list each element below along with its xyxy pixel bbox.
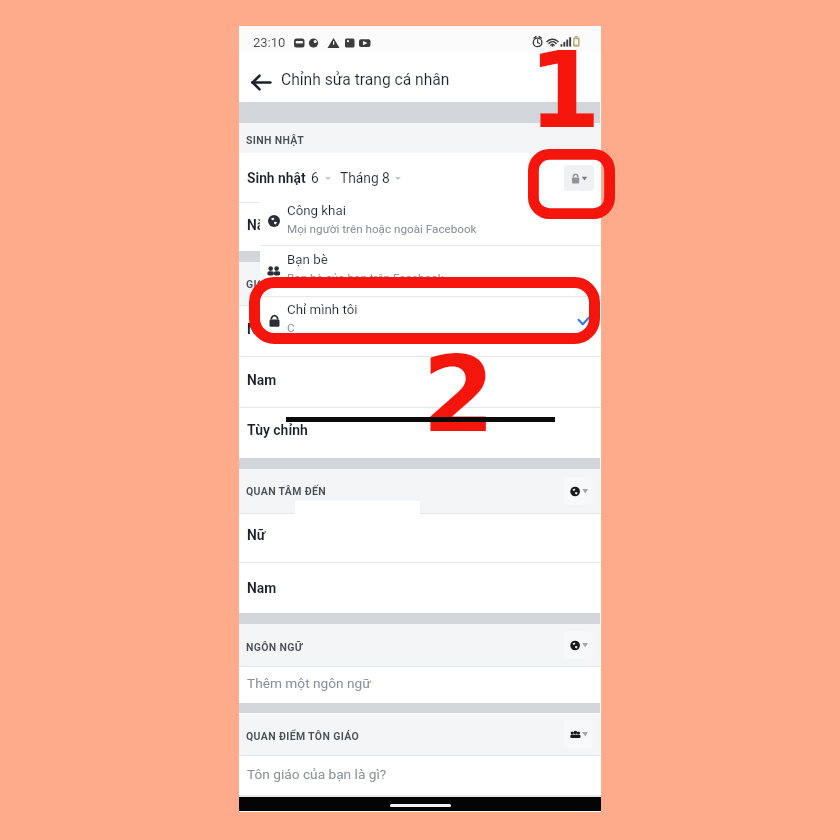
button[interactable] <box>239 755 601 796</box>
staticText: Tôn giáo của bạn là gì? <box>247 766 387 782</box>
staticText: Mọi người trên hoặc ngoài Facebook <box>287 222 477 236</box>
staticText: Tháng 8 <box>340 170 390 186</box>
button[interactable] <box>260 200 601 242</box>
staticText: C <box>287 321 295 335</box>
button[interactable] <box>260 249 601 291</box>
staticText: Nam <box>247 372 277 388</box>
staticText: Thêm một ngôn ngữ <box>247 675 371 691</box>
staticText: Bạn bè <box>287 252 328 268</box>
staticText: Sinh nhật <box>247 170 306 186</box>
button[interactable] <box>239 513 601 561</box>
button[interactable] <box>260 299 601 341</box>
button[interactable] <box>239 666 601 703</box>
button[interactable]: Privacy setting <box>564 720 593 748</box>
staticText: NGÔN NGỮ <box>246 641 303 653</box>
staticText: Công khai <box>287 203 346 219</box>
staticText: QUAN ĐIỂM TÔN GIÁO <box>246 730 360 742</box>
staticText: GIỚI TÍNH <box>246 278 297 290</box>
button[interactable] <box>239 305 601 356</box>
staticText: 23:10 <box>253 35 286 50</box>
staticText: QUAN TÂM ĐẾN <box>246 485 327 497</box>
staticText: Nữ <box>247 527 266 543</box>
staticText: Chỉnh sửa trang cá nhân <box>281 71 450 89</box>
staticText: Tùy chỉnh <box>247 422 308 438</box>
button[interactable]: Sinh nhật <box>247 170 401 186</box>
staticText: 2 <box>422 334 496 456</box>
button[interactable]: Back <box>241 60 281 104</box>
button[interactable]: Birthday privacy <box>564 165 594 191</box>
staticText: Nam <box>247 580 277 596</box>
button[interactable] <box>239 356 601 407</box>
staticText: Chỉ mình tôi <box>287 302 358 318</box>
staticText: 6 <box>311 170 319 186</box>
staticText: 1 <box>528 30 602 152</box>
button[interactable] <box>239 202 601 251</box>
button[interactable] <box>239 562 601 614</box>
button[interactable]: Privacy setting <box>564 477 593 505</box>
button[interactable]: Privacy setting <box>564 631 593 659</box>
staticText: Nữ <box>247 321 266 337</box>
staticText: SINH NHẬT <box>246 134 305 146</box>
staticText: Bạn bè của bạn trên Facebook <box>287 271 444 285</box>
button[interactable] <box>239 407 601 458</box>
staticText: Năm sinh <box>247 217 307 233</box>
